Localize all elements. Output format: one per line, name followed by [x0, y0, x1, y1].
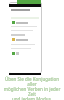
- staticText: Üben Sie die Konjugation aller möglichen…: [0, 76, 64, 100]
